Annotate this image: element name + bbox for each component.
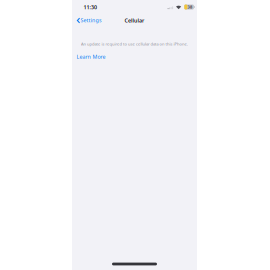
staticText: An update is required to use cellular da… bbox=[27, 39, 241, 49]
staticText: Learn More bbox=[62, 49, 120, 64]
staticText: Cellular bbox=[114, 13, 154, 27]
staticText: 38 bbox=[185, 2, 195, 12]
button[interactable]: Learn More bbox=[71, 51, 131, 63]
staticText: 11:30 bbox=[77, 0, 104, 14]
staticText: Settings bbox=[70, 13, 112, 27]
button[interactable]: Back to Settings bbox=[72, 10, 128, 31]
